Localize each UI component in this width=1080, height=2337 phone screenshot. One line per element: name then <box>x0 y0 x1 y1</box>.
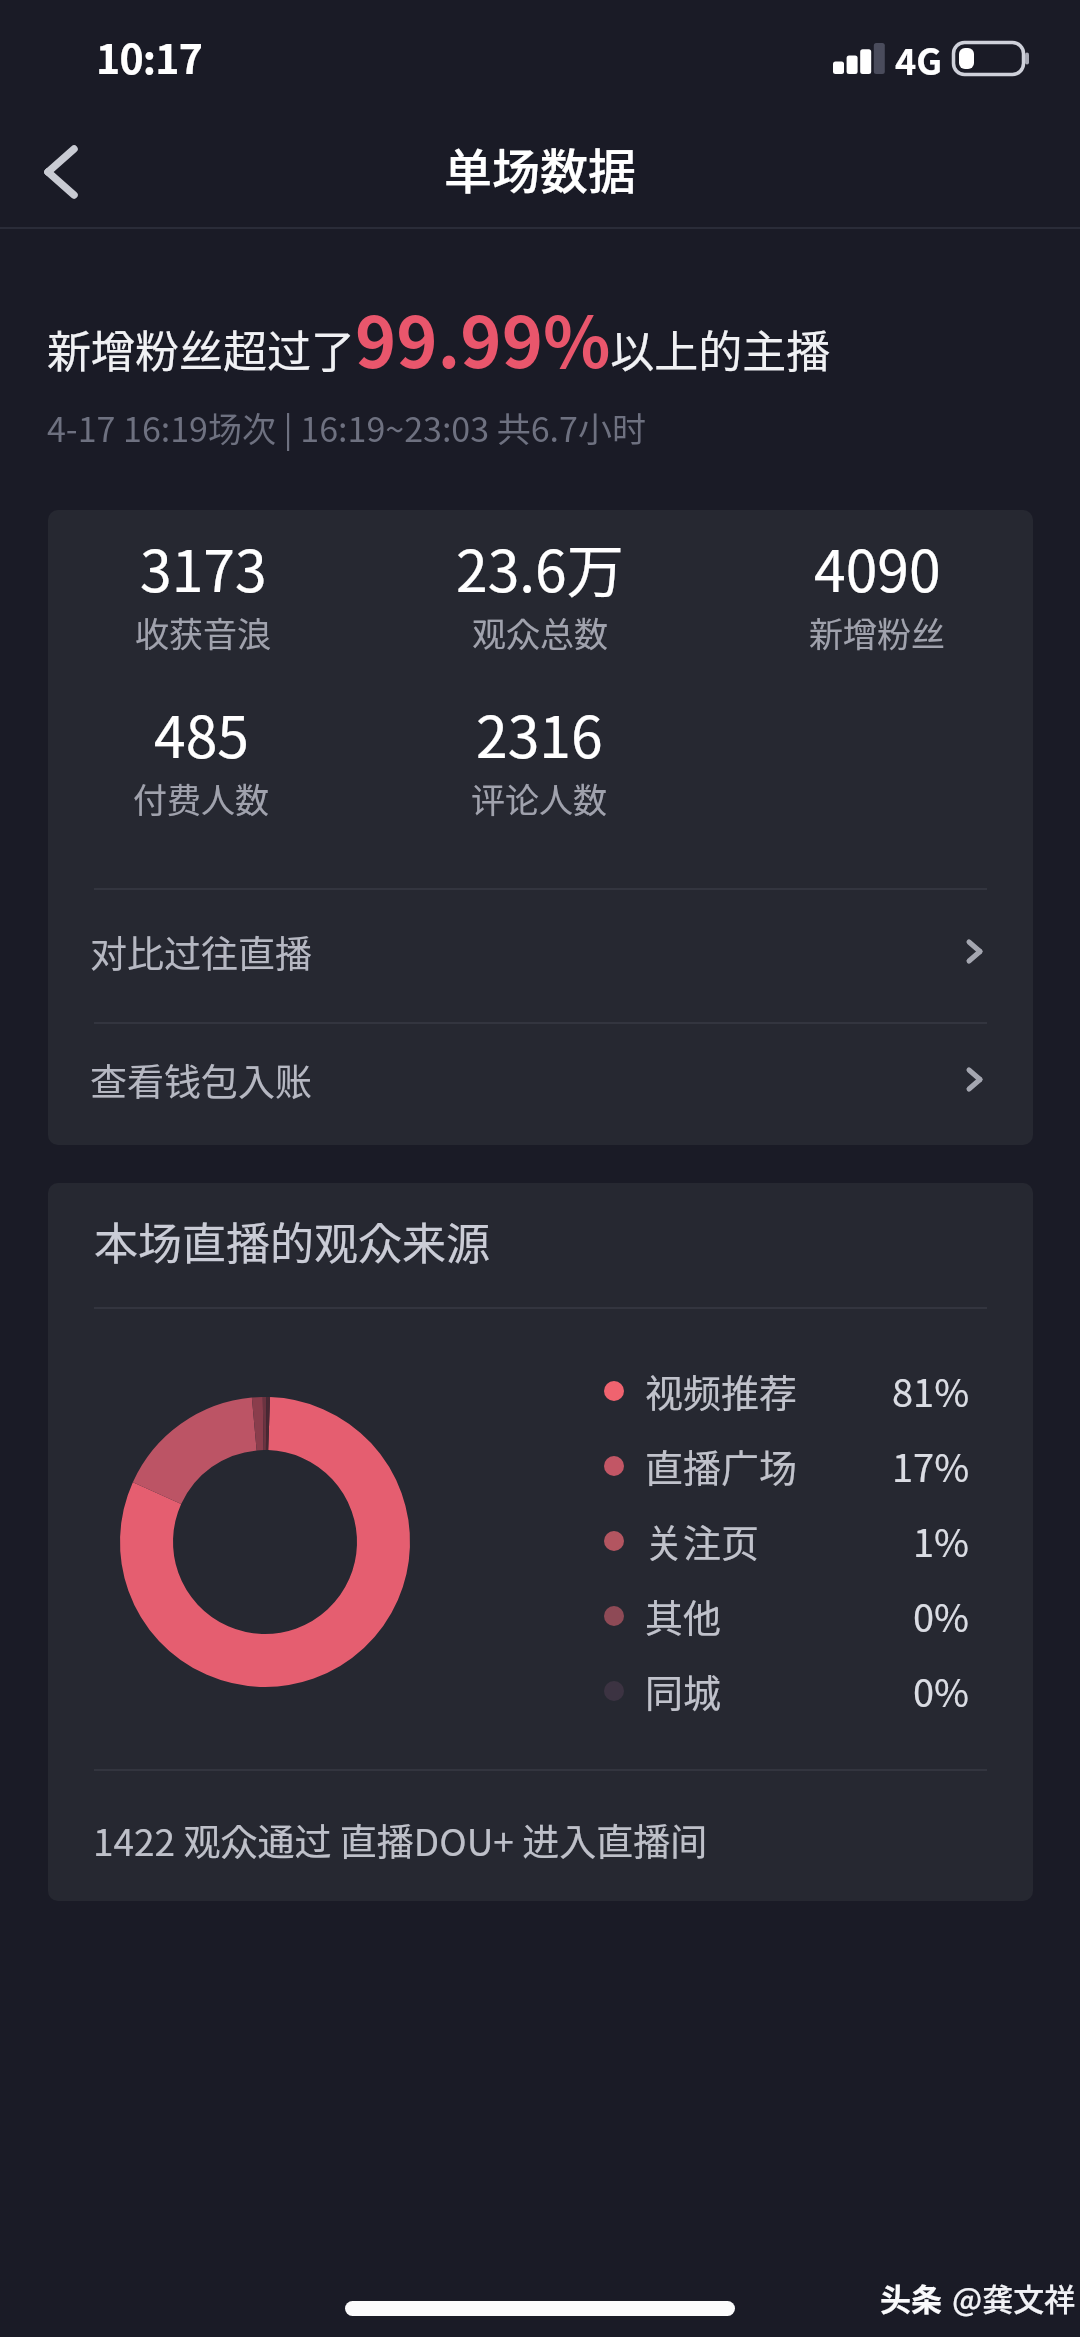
staticText: 4G <box>895 33 943 85</box>
staticText: 其他 <box>645 1588 722 1643</box>
staticText: 4-17 16:19场次 | 16:19~23:03 共6.7小时 <box>47 403 646 452</box>
staticText: 1% <box>913 1513 970 1568</box>
staticText: 付费人数 <box>133 774 269 823</box>
staticText: 23.6万 <box>456 526 624 609</box>
staticText: 本场直播的观众来源 <box>94 1209 490 1273</box>
staticText: 查看钱包入账 <box>90 1053 312 1107</box>
staticText: 1422 观众通过 直播DOU+ 进入直播间 <box>93 1813 708 1867</box>
staticText: 17% <box>892 1438 970 1493</box>
staticText: 81% <box>892 1363 970 1418</box>
staticText: 头条 <box>880 2275 942 2320</box>
button[interactable]: Back <box>6 117 116 227</box>
button[interactable]: 关注页 <box>604 1503 970 1578</box>
staticText: 3173 <box>140 526 267 609</box>
staticText: 评论人数 <box>471 774 607 823</box>
staticText: 同城 <box>645 1663 722 1718</box>
staticText: @龚文祥 <box>952 2275 1076 2320</box>
button[interactable]: 查看钱包入账 <box>48 1019 1033 1140</box>
button[interactable]: 直播广场 <box>604 1428 970 1503</box>
staticText: 0% <box>913 1663 970 1718</box>
staticText: 485 <box>154 692 249 775</box>
button[interactable]: 对比过往直播 <box>48 891 1033 1012</box>
staticText: 单场数据 <box>444 133 637 203</box>
staticText: 视频推荐 <box>645 1363 798 1418</box>
staticText: 0% <box>913 1588 970 1643</box>
button[interactable]: 视频推荐 <box>604 1353 970 1428</box>
staticText: 关注页 <box>645 1513 760 1568</box>
staticText: 收获音浪 <box>135 608 271 657</box>
staticText: 对比过往直播 <box>90 925 312 979</box>
staticText: 10:17 <box>96 26 203 85</box>
button[interactable]: 同城 <box>604 1653 970 1728</box>
staticText: 新增粉丝 <box>809 608 945 657</box>
staticText: 直播广场 <box>645 1438 798 1493</box>
staticText: 4090 <box>814 526 941 609</box>
staticText: 2316 <box>476 692 603 775</box>
button[interactable]: 其他 <box>604 1578 970 1653</box>
staticText: 观众总数 <box>472 608 608 657</box>
staticText: 新增粉丝超过了99.99%以上的主播 <box>47 287 831 388</box>
